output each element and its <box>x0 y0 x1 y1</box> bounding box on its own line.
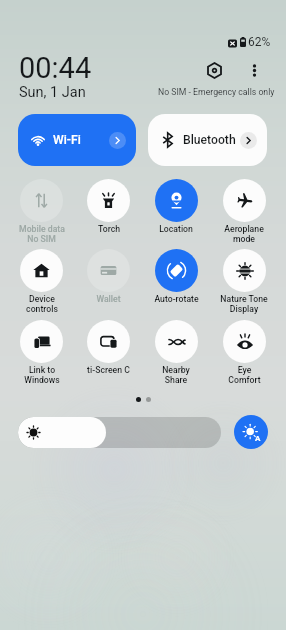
staticText: A <box>255 434 261 443</box>
staticText: Location <box>159 224 193 234</box>
staticText: Nearby Share <box>162 365 190 385</box>
staticText: Link to Windows <box>24 365 60 385</box>
staticText: Wallet <box>96 294 121 304</box>
button[interactable]: Device controls <box>8 249 75 314</box>
button[interactable]: Auto brightness <box>234 415 268 449</box>
button[interactable]: Auto-rotate <box>142 249 210 304</box>
staticText: Auto-rotate <box>154 294 199 304</box>
staticText: No SIM - Emergency calls only <box>158 87 275 97</box>
staticText: Aeroplane mode <box>224 224 264 244</box>
staticText: Torch <box>98 224 120 234</box>
button[interactable]: Wi-Fi <box>18 114 136 166</box>
button[interactable]: Torch <box>75 179 142 234</box>
button[interactable]: More options <box>242 58 266 82</box>
button[interactable]: Nature Tone Display <box>210 249 278 314</box>
staticText: Device controls <box>26 294 58 314</box>
staticText: Nature Tone Display <box>220 294 268 314</box>
staticText: ti-Screen C <box>87 365 130 375</box>
button[interactable]: Nearby Share <box>142 320 210 385</box>
staticText: Mobile data <box>19 224 65 234</box>
button[interactable]: Brightness <box>18 417 221 448</box>
staticText: No SIM <box>27 234 56 244</box>
button[interactable]: ti-Screen C <box>75 320 142 375</box>
staticText: Eye Comfort <box>228 365 261 385</box>
button[interactable]: Mobile data <box>8 179 75 244</box>
button[interactable]: Wallet <box>75 249 142 304</box>
staticText: Wi-Fi <box>53 133 109 147</box>
staticText: Sun, 1 Jan <box>19 84 86 101</box>
button[interactable]: Aeroplane mode <box>210 179 278 244</box>
staticText: Bluetooth <box>183 133 240 147</box>
other: Battery 62 percent <box>240 38 246 48</box>
button[interactable]: Eye Comfort <box>210 320 278 385</box>
staticText: 62% <box>248 35 271 49</box>
button[interactable]: Location <box>142 179 210 234</box>
other: Sound off <box>228 39 237 48</box>
staticText: 00:44 <box>19 51 92 85</box>
button[interactable]: Link to Windows <box>8 320 75 385</box>
button[interactable]: Quick settings <box>202 58 226 82</box>
button[interactable]: Bluetooth <box>148 114 267 166</box>
